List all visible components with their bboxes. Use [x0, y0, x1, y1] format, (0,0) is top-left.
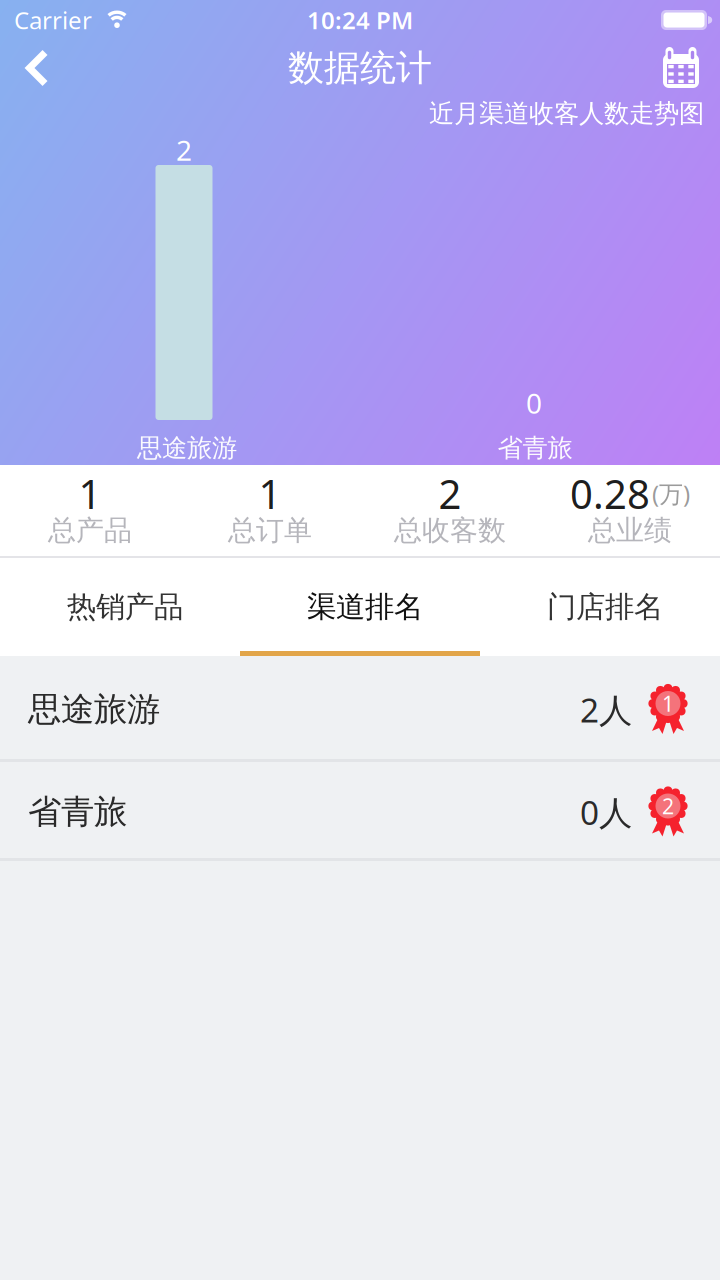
staticText: 0人	[580, 790, 632, 834]
staticText: 2	[662, 792, 674, 820]
staticText: 0.28	[570, 467, 650, 520]
staticText: 数据统计	[288, 46, 432, 90]
button[interactable]: Calendar	[661, 44, 720, 92]
staticText: 总业绩	[588, 513, 672, 548]
staticText: 1	[258, 467, 281, 520]
button[interactable]: 思途旅游	[0, 656, 720, 759]
button[interactable]: 热销产品	[5, 558, 245, 656]
staticText: 总产品	[48, 513, 132, 548]
staticText: 思途旅游	[28, 689, 160, 730]
staticText: 省青旅	[28, 791, 127, 832]
staticText: (万)	[652, 478, 690, 509]
staticText: Carrier	[14, 4, 92, 36]
staticText: 总收客数	[394, 513, 506, 548]
button[interactable]: 省青旅	[0, 762, 720, 858]
button[interactable]: Back	[0, 44, 66, 92]
staticText: 思途旅游	[137, 432, 237, 463]
staticText: 1	[78, 467, 101, 520]
staticText: 近月渠道收客人数走势图	[429, 98, 704, 129]
staticText: 2	[438, 467, 461, 520]
staticText: 热销产品	[67, 589, 183, 625]
staticText: 门店排名	[547, 589, 663, 625]
staticText: 10:24 PM	[307, 4, 413, 36]
staticText: 渠道排名	[307, 589, 423, 625]
staticText: 2人	[580, 687, 632, 732]
staticText: 总订单	[228, 513, 312, 548]
staticText: 1	[662, 689, 674, 718]
button[interactable]: 门店排名	[485, 558, 720, 656]
staticText: 省青旅	[497, 432, 572, 463]
staticText: 2	[176, 131, 192, 169]
staticText: 0	[526, 384, 542, 422]
button[interactable]: 渠道排名	[245, 558, 485, 656]
